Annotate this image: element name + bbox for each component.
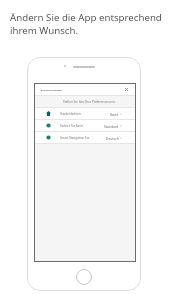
staticText: Smart-Navigation für... <box>60 136 91 140</box>
staticText: Farbstil für Karte <box>60 124 84 128</box>
staticText: EINSTELLUNGEN <box>41 88 62 91</box>
button[interactable]: Smart-Navigation für... <box>46 132 122 143</box>
button[interactable]: Schließen <box>123 86 130 93</box>
staticText: Standard <box>104 124 119 128</box>
button[interactable]: Startbildschirm <box>46 108 122 119</box>
button[interactable]: Home <box>76 269 92 285</box>
staticText: Startbildschirm <box>60 112 82 116</box>
staticText: Karte <box>110 112 119 116</box>
staticText: Stellen Sie hier Ihre Präferenzen ein. <box>63 100 116 104</box>
staticText: Deutsch <box>106 136 119 140</box>
button[interactable]: Farbstil für Karte <box>46 120 122 131</box>
staticText: Ändern Sie die App entsprechend ihrem Wu… <box>10 11 162 37</box>
